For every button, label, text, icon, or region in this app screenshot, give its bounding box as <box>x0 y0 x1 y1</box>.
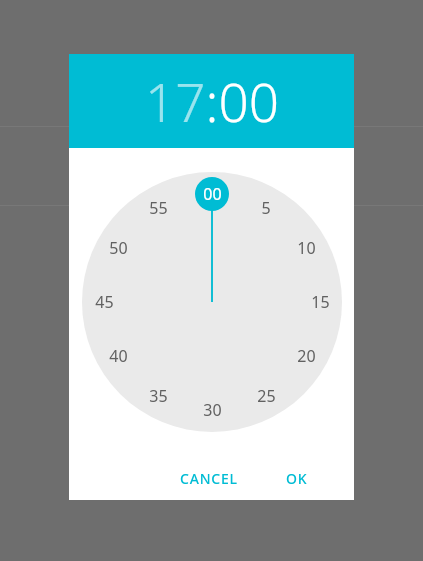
staticText: 35 <box>149 385 168 407</box>
button[interactable]: 5 <box>249 196 283 220</box>
staticText: 5 <box>261 197 271 219</box>
staticText: OK <box>286 469 308 488</box>
button[interactable]: 50 <box>101 236 135 260</box>
staticText: 30 <box>203 399 222 421</box>
staticText: 40 <box>109 345 128 367</box>
button[interactable]: CANCEL <box>170 463 248 494</box>
button[interactable]: 10 <box>289 236 323 260</box>
button[interactable]: 30 <box>195 398 229 422</box>
button[interactable]: 35 <box>141 384 175 408</box>
staticText: 25 <box>257 385 276 407</box>
staticText: 00 <box>203 183 222 205</box>
button[interactable]: 40 <box>101 344 135 368</box>
staticText: 15 <box>311 291 330 313</box>
button[interactable]: 15 <box>303 290 337 314</box>
staticText: CANCEL <box>180 469 238 488</box>
staticText: 45 <box>95 291 114 313</box>
staticText: 10 <box>297 237 316 259</box>
button[interactable]: 00 <box>195 182 229 206</box>
staticText: 20 <box>297 345 316 367</box>
button[interactable]: 20 <box>289 344 323 368</box>
button[interactable]: 55 <box>141 196 175 220</box>
button[interactable]: 17:00 <box>141 65 283 137</box>
button[interactable]: OK <box>276 463 318 494</box>
staticText: 55 <box>149 197 168 219</box>
button[interactable]: 45 <box>87 290 121 314</box>
staticText: 17:00 <box>145 65 279 137</box>
staticText: 50 <box>109 237 128 259</box>
button[interactable]: 25 <box>249 384 283 408</box>
button[interactable]: Minute picker clock <box>82 172 342 432</box>
